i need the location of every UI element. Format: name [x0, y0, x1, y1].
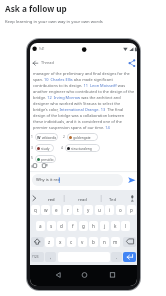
staticText: n	[103, 239, 106, 245]
staticText: 1	[31, 135, 33, 139]
staticText: i	[109, 207, 111, 213]
button[interactable]	[41, 162, 49, 170]
staticText: presidio	[41, 157, 54, 161]
button[interactable]: b	[89, 237, 98, 247]
staticText: Thread	[41, 60, 54, 65]
staticText: h	[92, 223, 95, 229]
staticText: bridge. 12 Irving Morrow was the archite…	[33, 95, 121, 100]
staticText: y	[87, 207, 90, 213]
staticText: 5	[31, 156, 33, 160]
button[interactable]	[127, 59, 136, 68]
staticText: bridge's color, International Orange. 13…	[33, 107, 124, 112]
staticText: structuraleng	[71, 146, 92, 150]
button[interactable]: s	[47, 221, 56, 231]
staticText: p	[130, 207, 133, 213]
staticText: read	[78, 197, 87, 203]
staticText: 2	[63, 135, 65, 139]
staticText: 4	[61, 146, 63, 150]
staticText: b	[92, 239, 95, 245]
staticText: k	[114, 223, 117, 229]
staticText: r	[67, 207, 69, 213]
button[interactable]	[123, 237, 136, 247]
staticText: t	[77, 207, 79, 213]
staticText: j	[104, 223, 106, 229]
staticText: ?123	[32, 255, 39, 259]
button[interactable]	[127, 175, 137, 185]
button[interactable]: goldengate	[67, 133, 98, 141]
staticText: red	[48, 197, 55, 203]
button[interactable]: l	[121, 221, 130, 231]
button[interactable]: q	[31, 205, 40, 215]
staticText: d	[60, 223, 63, 229]
staticText: another engineer who contributed to the …	[33, 89, 135, 94]
button[interactable]: n	[100, 237, 109, 247]
staticText: s	[50, 223, 53, 229]
staticText: g	[82, 223, 85, 229]
staticText: wikipedia	[42, 135, 56, 139]
staticText: these individuals, and it is considered …	[33, 119, 122, 124]
button[interactable]: x	[56, 237, 65, 247]
button[interactable]	[31, 59, 40, 68]
staticText: w	[44, 207, 48, 213]
button[interactable]: presidio	[35, 155, 56, 163]
staticText: 3	[31, 146, 33, 150]
button[interactable]	[79, 269, 90, 280]
button[interactable]: c	[67, 237, 76, 247]
staticText: c	[70, 239, 73, 245]
button[interactable]: Why is it red	[32, 174, 123, 186]
staticText: u	[98, 207, 101, 213]
button[interactable]: r	[63, 205, 72, 215]
button[interactable]: f	[68, 221, 77, 231]
button[interactable]: p	[127, 205, 136, 215]
staticText: f	[72, 223, 74, 229]
button[interactable]: g	[79, 221, 88, 231]
staticText: goldengate	[73, 135, 91, 139]
staticText: v	[81, 239, 84, 245]
button[interactable]: y	[84, 205, 93, 215]
button[interactable]: j	[100, 221, 109, 231]
button[interactable]: h	[89, 221, 98, 231]
button[interactable]: v	[78, 237, 87, 247]
button[interactable]: a	[36, 221, 45, 231]
button[interactable]: d	[57, 221, 66, 231]
button[interactable]	[31, 237, 44, 247]
staticText: o	[119, 207, 122, 213]
button[interactable]: .	[111, 252, 122, 262]
button[interactable]: structuraleng	[65, 144, 100, 152]
staticText: designer who worked with Strauss to sele…	[33, 101, 121, 106]
button[interactable]	[31, 162, 39, 170]
staticText: W	[37, 135, 41, 140]
button[interactable]: W	[35, 133, 58, 141]
staticText: z	[48, 239, 51, 245]
staticText: .	[116, 254, 118, 260]
button[interactable]: m	[111, 237, 120, 247]
button[interactable]: w	[41, 205, 50, 215]
staticText: Keep learning in your own way in your ow…	[5, 19, 103, 25]
button[interactable]	[52, 269, 63, 280]
button[interactable]: ,	[45, 252, 56, 262]
button[interactable]: k	[111, 221, 120, 231]
staticText: l	[125, 223, 127, 229]
staticText: study	[41, 146, 50, 150]
staticText: design of the bridge was a collaboration…	[33, 113, 125, 118]
staticText: span. 10 Charles Ellis also made signifi…	[33, 77, 113, 82]
button[interactable]	[31, 252, 44, 262]
staticText: manager of the preliminary and final des…	[33, 71, 130, 76]
button[interactable]	[107, 269, 118, 280]
button[interactable]: i	[105, 205, 114, 215]
button[interactable]: study	[35, 144, 54, 152]
staticText: premier suspension spans of our time. 14	[33, 125, 110, 130]
staticText: Ask a follow up	[5, 3, 67, 14]
staticText: 9:41	[39, 47, 45, 51]
staticText: Ted	[109, 197, 116, 203]
staticText: q	[34, 207, 37, 213]
staticText: m	[113, 239, 118, 245]
staticText: contributions to its design. 11 Leon Moi…	[33, 83, 126, 88]
button[interactable]: e	[52, 205, 61, 215]
button[interactable]: z	[45, 237, 54, 247]
button[interactable]: o	[116, 205, 125, 215]
button[interactable]: t	[73, 205, 82, 215]
button[interactable]: u	[95, 205, 104, 215]
button[interactable]	[123, 252, 136, 262]
